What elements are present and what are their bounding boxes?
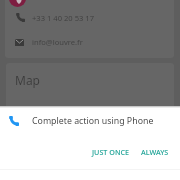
staticText: ALWAYS	[141, 147, 169, 157]
button[interactable]: Map	[6, 63, 174, 106]
staticText: Complete action using Phone	[32, 115, 154, 127]
staticText: info@louvre.fr	[32, 37, 83, 47]
staticText: +33 1 40 20 53 17	[32, 13, 94, 23]
button[interactable]: ALWAYS	[136, 143, 174, 161]
button[interactable]: JUST ONCE	[87, 143, 135, 161]
other: Email	[15, 38, 24, 47]
button[interactable]: Call	[5, 0, 174, 58]
other: Phone app	[9, 116, 19, 126]
staticText: Map	[15, 72, 40, 88]
staticText: JUST ONCE	[92, 147, 130, 157]
other: Call	[16, 13, 25, 22]
button[interactable]: Favourite	[9, 0, 26, 7]
